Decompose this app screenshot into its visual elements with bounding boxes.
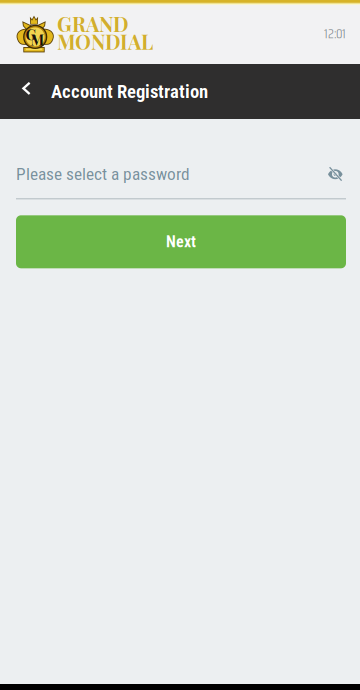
button[interactable]: Show password [326, 165, 346, 184]
staticText: M [30, 30, 44, 49]
staticText: GRAND [57, 10, 129, 37]
staticText: G [25, 24, 36, 44]
staticText: Account Registration [51, 81, 208, 102]
button[interactable]: Next [16, 215, 346, 268]
staticText: MONDIAL [57, 28, 153, 55]
staticText: Next [166, 232, 196, 251]
staticText: Please select a password [16, 164, 190, 184]
staticText: 12:01 [324, 23, 346, 44]
button[interactable]: Back [10, 64, 42, 119]
